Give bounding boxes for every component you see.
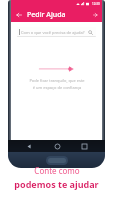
- staticText: Pedir Ajuda: [27, 10, 66, 20]
- button[interactable]: Back: [23, 140, 35, 152]
- button[interactable]: Search: [86, 28, 94, 36]
- button[interactable]: Com o que você precisa de ajuda?: [17, 27, 96, 37]
- button[interactable]: Recent apps: [78, 140, 90, 152]
- staticText: Pode ficar tranquilo, que este é um espa…: [29, 78, 85, 90]
- staticText: 12:30: [92, 2, 100, 6]
- staticText: podemos te ajudar: [14, 178, 99, 190]
- button[interactable]: More options: [89, 9, 100, 20]
- staticText: Com o que você precisa de ajuda?: [21, 30, 85, 35]
- staticText: Conte como: [34, 165, 80, 176]
- button[interactable]: Back: [13, 9, 24, 20]
- button[interactable]: Home: [51, 140, 63, 152]
- button[interactable]: Home key: [46, 156, 68, 165]
